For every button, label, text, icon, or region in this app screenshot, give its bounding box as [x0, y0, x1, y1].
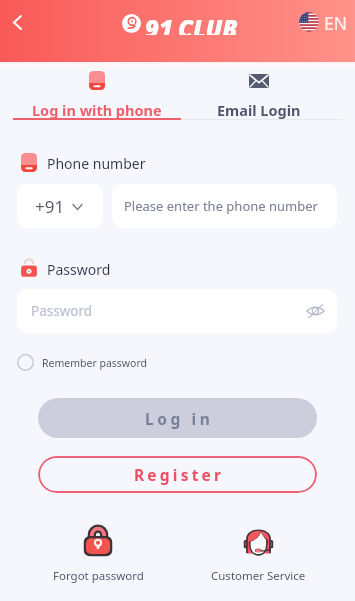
button[interactable]: Register	[38, 456, 317, 493]
staticText: Phone number	[47, 154, 146, 173]
button[interactable]: Please enter the phone number	[112, 184, 337, 228]
button[interactable]: Show password	[303, 299, 327, 323]
staticText: CLUB	[178, 12, 238, 35]
staticText: Log in with phone	[32, 100, 162, 120]
button[interactable]: Back	[0, 1, 38, 43]
staticText: EN	[324, 11, 348, 33]
button[interactable]: Forgot password	[38, 525, 158, 584]
staticText: +91	[35, 195, 65, 218]
staticText: Email Login	[217, 100, 301, 120]
button[interactable]: Email Login	[180, 62, 337, 120]
button[interactable]: EN	[299, 11, 348, 33]
button[interactable]: +91	[17, 184, 103, 228]
button[interactable]: Customer Service	[198, 525, 318, 584]
button[interactable]: Password	[17, 289, 337, 333]
staticText: Customer Service	[211, 568, 306, 584]
button[interactable]: Log in with phone	[13, 62, 181, 120]
staticText: Please enter the phone number	[124, 197, 318, 215]
staticText: Password	[47, 260, 111, 279]
staticText: Forgot password	[53, 568, 144, 584]
staticText: Remember password	[42, 356, 148, 370]
staticText: Log in	[145, 408, 214, 429]
staticText: 91	[145, 12, 173, 35]
button[interactable]: Log in	[38, 398, 317, 438]
staticText: Register	[134, 464, 225, 485]
button[interactable]: Remember password	[17, 353, 148, 372]
staticText: Password	[31, 302, 93, 320]
